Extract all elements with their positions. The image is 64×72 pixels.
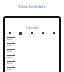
staticText: View Schedule	[0, 4, 64, 9]
staticText: Schedule	[26, 26, 39, 30]
